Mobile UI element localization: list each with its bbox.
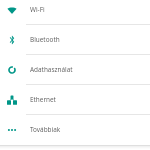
button[interactable]: Bluetooth	[0, 25, 150, 55]
staticText: Wi-Fi	[30, 5, 45, 14]
staticText: Adathasználat	[30, 65, 73, 74]
button[interactable]: Wi-Fi	[0, 0, 150, 25]
staticText: Bluetooth	[30, 35, 60, 44]
button[interactable]: Továbbiak	[0, 115, 150, 145]
button[interactable]: Adathasználat	[0, 55, 150, 85]
staticText: Ethernet	[30, 95, 56, 104]
staticText: Továbbiak	[30, 125, 61, 134]
button[interactable]: Ethernet	[0, 85, 150, 115]
